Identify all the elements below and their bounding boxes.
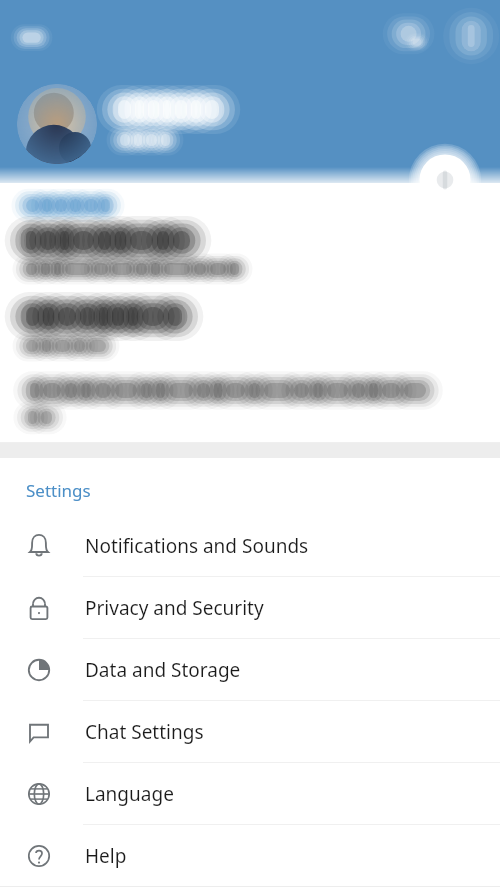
button[interactable]: More options (451, 17, 491, 57)
button[interactable]: Back (12, 18, 52, 58)
button[interactable]: Edit profile (413, 148, 477, 212)
staticText: Help (85, 843, 127, 869)
staticText: Data and Storage (85, 657, 241, 683)
staticText: Settings (26, 479, 91, 502)
button[interactable]: Search (391, 17, 431, 57)
staticText: Language (85, 781, 174, 807)
staticText: Privacy and Security (85, 595, 264, 621)
staticText: Notifications and Sounds (85, 533, 309, 559)
button[interactable]: Profile photo (17, 84, 97, 164)
button[interactable]: Privacy and Security (0, 577, 500, 639)
button[interactable]: Notifications and Sounds (0, 515, 500, 577)
button[interactable]: Data and Storage (0, 639, 500, 701)
staticText: Chat Settings (85, 719, 204, 745)
button[interactable]: Language (0, 763, 500, 825)
button[interactable]: Chat Settings (0, 701, 500, 763)
button[interactable]: Help (0, 825, 500, 886)
